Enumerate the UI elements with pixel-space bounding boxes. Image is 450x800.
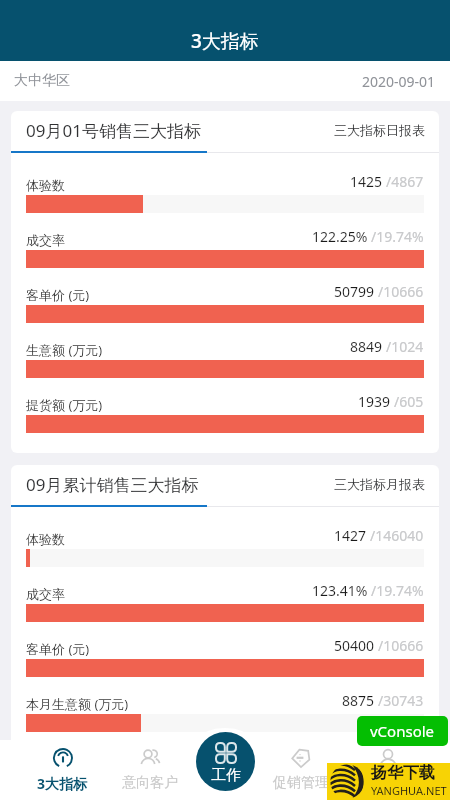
- staticText: 09月累计销售三大指标: [26, 473, 199, 496]
- staticText: /146040: [370, 526, 424, 545]
- staticText: vConsole: [370, 721, 435, 741]
- staticText: /4867: [386, 172, 424, 191]
- button[interactable]: 3大指标: [19, 740, 106, 800]
- staticText: 三大指标日报表: [334, 122, 425, 138]
- staticText: 体验数: [26, 531, 65, 547]
- staticText: 大中华区: [14, 72, 70, 90]
- staticText: 09月01号销售三大指标: [26, 119, 201, 142]
- staticText: YANGHUA.NET: [371, 783, 447, 798]
- staticText: 8875: [342, 691, 375, 710]
- staticText: 本月生意额 (万元): [26, 695, 129, 713]
- button[interactable]: 我的: [344, 740, 431, 800]
- staticText: 体验数: [26, 177, 65, 193]
- staticText: /605: [394, 392, 424, 411]
- staticText: 3大指标: [191, 28, 259, 54]
- staticText: 意向客户: [122, 774, 178, 792]
- staticText: 122.25%: [312, 227, 368, 246]
- staticText: 客单价 (元): [26, 286, 90, 304]
- button[interactable]: 工作: [196, 732, 255, 791]
- staticText: /19.74%: [371, 227, 424, 246]
- staticText: 提货额 (万元): [26, 396, 103, 414]
- staticText: 1939: [358, 392, 391, 411]
- staticText: /19.74%: [371, 581, 424, 600]
- staticText: 客单价 (元): [26, 640, 90, 658]
- button[interactable]: 促销管理: [257, 740, 344, 800]
- button[interactable]: 意向客户: [106, 740, 193, 800]
- staticText: 促销管理: [273, 774, 329, 792]
- staticText: 工作: [211, 766, 241, 785]
- staticText: 生意额 (万元): [26, 341, 103, 359]
- staticText: 2020-09-01: [362, 72, 436, 91]
- staticText: 50799: [334, 282, 375, 301]
- staticText: 50400: [334, 636, 375, 655]
- staticText: 8849: [350, 337, 383, 356]
- staticText: 扬华下载: [371, 763, 435, 783]
- staticText: 成交率: [26, 586, 65, 602]
- staticText: 123.41%: [312, 581, 368, 600]
- staticText: 1425: [350, 172, 383, 191]
- staticText: /30743: [378, 691, 424, 710]
- staticText: 3大指标: [37, 774, 88, 793]
- staticText: 成交率: [26, 232, 65, 248]
- button[interactable]: vConsole: [357, 716, 448, 746]
- staticText: 我的: [374, 774, 402, 792]
- staticText: /10666: [378, 636, 424, 655]
- staticText: /10666: [378, 282, 424, 301]
- staticText: 1427: [334, 526, 367, 545]
- staticText: 三大指标月报表: [334, 476, 425, 492]
- staticText: /1024: [386, 337, 424, 356]
